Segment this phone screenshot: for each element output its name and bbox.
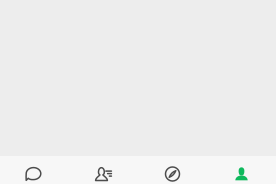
button[interactable]: Chats	[0, 156, 69, 184]
button[interactable]: Contacts	[69, 156, 138, 184]
button[interactable]: Me	[207, 156, 276, 184]
button[interactable]: Discover	[138, 156, 207, 184]
